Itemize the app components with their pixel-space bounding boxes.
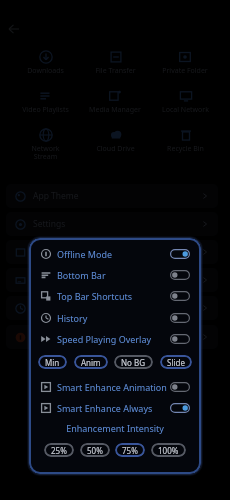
button[interactable]: Anim bbox=[74, 355, 108, 369]
staticText: App Theme bbox=[33, 190, 79, 202]
button[interactable]: 100% bbox=[151, 443, 186, 457]
button[interactable]: Top Bar Shortcuts bbox=[41, 285, 190, 306]
button[interactable]: Smart Enhance Always bbox=[41, 397, 190, 418]
button[interactable]: Smart Enhance Animation bbox=[170, 382, 190, 392]
button[interactable]: History bbox=[170, 313, 190, 323]
button[interactable]: Speed Playing Overlay bbox=[170, 334, 190, 344]
button[interactable]: Bottom Bar bbox=[41, 264, 190, 285]
staticText: 25% bbox=[51, 445, 67, 456]
staticText: Smart Enhance Animation bbox=[57, 381, 167, 393]
button[interactable]: 50% bbox=[80, 443, 110, 457]
staticText: Local Network bbox=[162, 105, 209, 115]
button[interactable]: History bbox=[15, 296, 209, 320]
staticText: About bbox=[33, 331, 58, 343]
staticText: 100% bbox=[158, 445, 179, 456]
button[interactable]: App Theme bbox=[15, 184, 209, 208]
staticText: File Transfer bbox=[95, 66, 136, 76]
button[interactable]: Media Manager bbox=[82, 89, 148, 123]
staticText: Offline Mode bbox=[57, 248, 113, 260]
button[interactable]: Offline Mode bbox=[41, 243, 190, 264]
button[interactable]: File Transfer bbox=[82, 50, 148, 84]
staticText: Slide bbox=[167, 357, 185, 368]
staticText: 75% bbox=[122, 445, 138, 456]
staticText: History bbox=[57, 312, 88, 324]
button[interactable]: Smart Enhance Animation bbox=[41, 376, 190, 397]
button[interactable]: 25% bbox=[44, 443, 74, 457]
button[interactable]: Smart Enhance Always bbox=[170, 403, 190, 413]
button[interactable]: Recycle Bin bbox=[152, 128, 218, 162]
button[interactable]: 75% bbox=[115, 443, 145, 457]
button[interactable]: Video Playlists bbox=[12, 89, 78, 123]
button[interactable]: Private Folder bbox=[152, 50, 218, 84]
button[interactable]: History bbox=[41, 307, 190, 328]
staticText: Player bbox=[33, 246, 58, 258]
staticText: Speed Playing Overlay bbox=[57, 333, 152, 345]
button[interactable]: Slide bbox=[160, 355, 192, 369]
staticText: 50% bbox=[87, 445, 103, 456]
staticText: Downloads bbox=[27, 66, 64, 76]
staticText: Top Bar Shortcuts bbox=[57, 290, 133, 302]
button[interactable]: Downloads bbox=[12, 50, 78, 84]
staticText: Subtitles bbox=[33, 274, 68, 286]
staticText: Media Manager bbox=[89, 105, 141, 115]
staticText: Private Folder bbox=[162, 66, 208, 76]
staticText: Anim bbox=[81, 357, 101, 368]
staticText: Video Playlists bbox=[22, 105, 69, 115]
staticText: No BG bbox=[121, 357, 146, 368]
button[interactable]: No BG bbox=[114, 355, 153, 369]
button[interactable]: Min bbox=[38, 355, 67, 369]
button[interactable]: Player bbox=[15, 240, 209, 264]
staticText: Enhancement Intensity bbox=[29, 422, 201, 434]
button[interactable]: Network Stream bbox=[12, 128, 78, 162]
button[interactable]: Cloud Drive bbox=[82, 128, 148, 162]
staticText: Cloud Drive bbox=[96, 144, 135, 154]
staticText: History bbox=[33, 302, 62, 314]
button[interactable]: Local Network bbox=[152, 89, 218, 123]
button[interactable]: Settings bbox=[15, 212, 209, 236]
staticText: Network Stream bbox=[31, 144, 60, 161]
staticText: Bottom Bar bbox=[57, 269, 106, 281]
button[interactable]: Top Bar Shortcuts bbox=[170, 291, 190, 301]
button[interactable]: About bbox=[15, 325, 209, 349]
button[interactable]: Offline Mode bbox=[170, 249, 190, 259]
staticText: Recycle Bin bbox=[167, 144, 204, 154]
staticText: Min bbox=[45, 357, 60, 368]
staticText: Smart Enhance Always bbox=[57, 402, 153, 414]
button[interactable]: Bottom Bar bbox=[170, 270, 190, 280]
staticText: Settings bbox=[33, 218, 66, 230]
button[interactable]: Subtitles bbox=[15, 268, 209, 292]
button[interactable]: Back bbox=[4, 19, 24, 39]
button[interactable]: Speed Playing Overlay bbox=[41, 328, 190, 349]
